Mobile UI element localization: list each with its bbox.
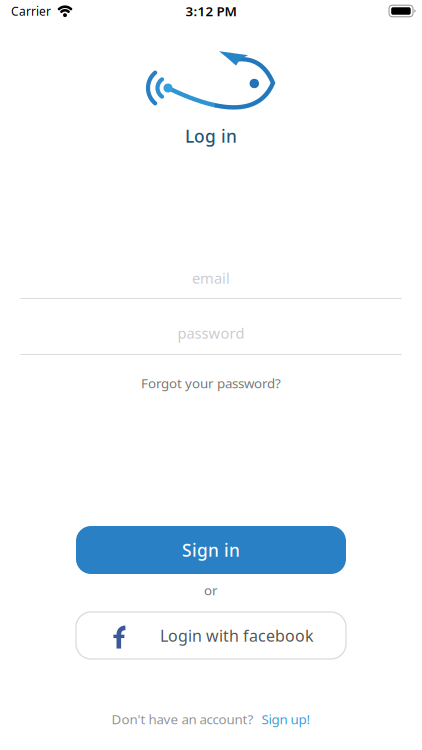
staticText: Sign in <box>182 538 240 561</box>
staticText: email <box>192 268 230 288</box>
button[interactable]: Login with facebook <box>76 612 346 659</box>
staticText: password <box>177 323 244 343</box>
button[interactable]: Forgot your password? <box>141 373 281 393</box>
button[interactable]: Sign up! <box>261 710 310 728</box>
staticText: 3:12 PM <box>185 2 236 20</box>
staticText: or <box>204 581 218 599</box>
staticText: Forgot your password? <box>141 374 281 392</box>
staticText: Login with facebook <box>160 625 314 646</box>
button[interactable]: password <box>20 322 401 355</box>
staticText: Sign up! <box>261 710 310 728</box>
staticText: Don't have an account? <box>111 710 253 728</box>
button[interactable]: email <box>20 267 401 299</box>
staticText: Carrier <box>11 3 51 19</box>
button[interactable]: Sign in <box>76 526 346 574</box>
staticText: Log in <box>185 124 237 147</box>
